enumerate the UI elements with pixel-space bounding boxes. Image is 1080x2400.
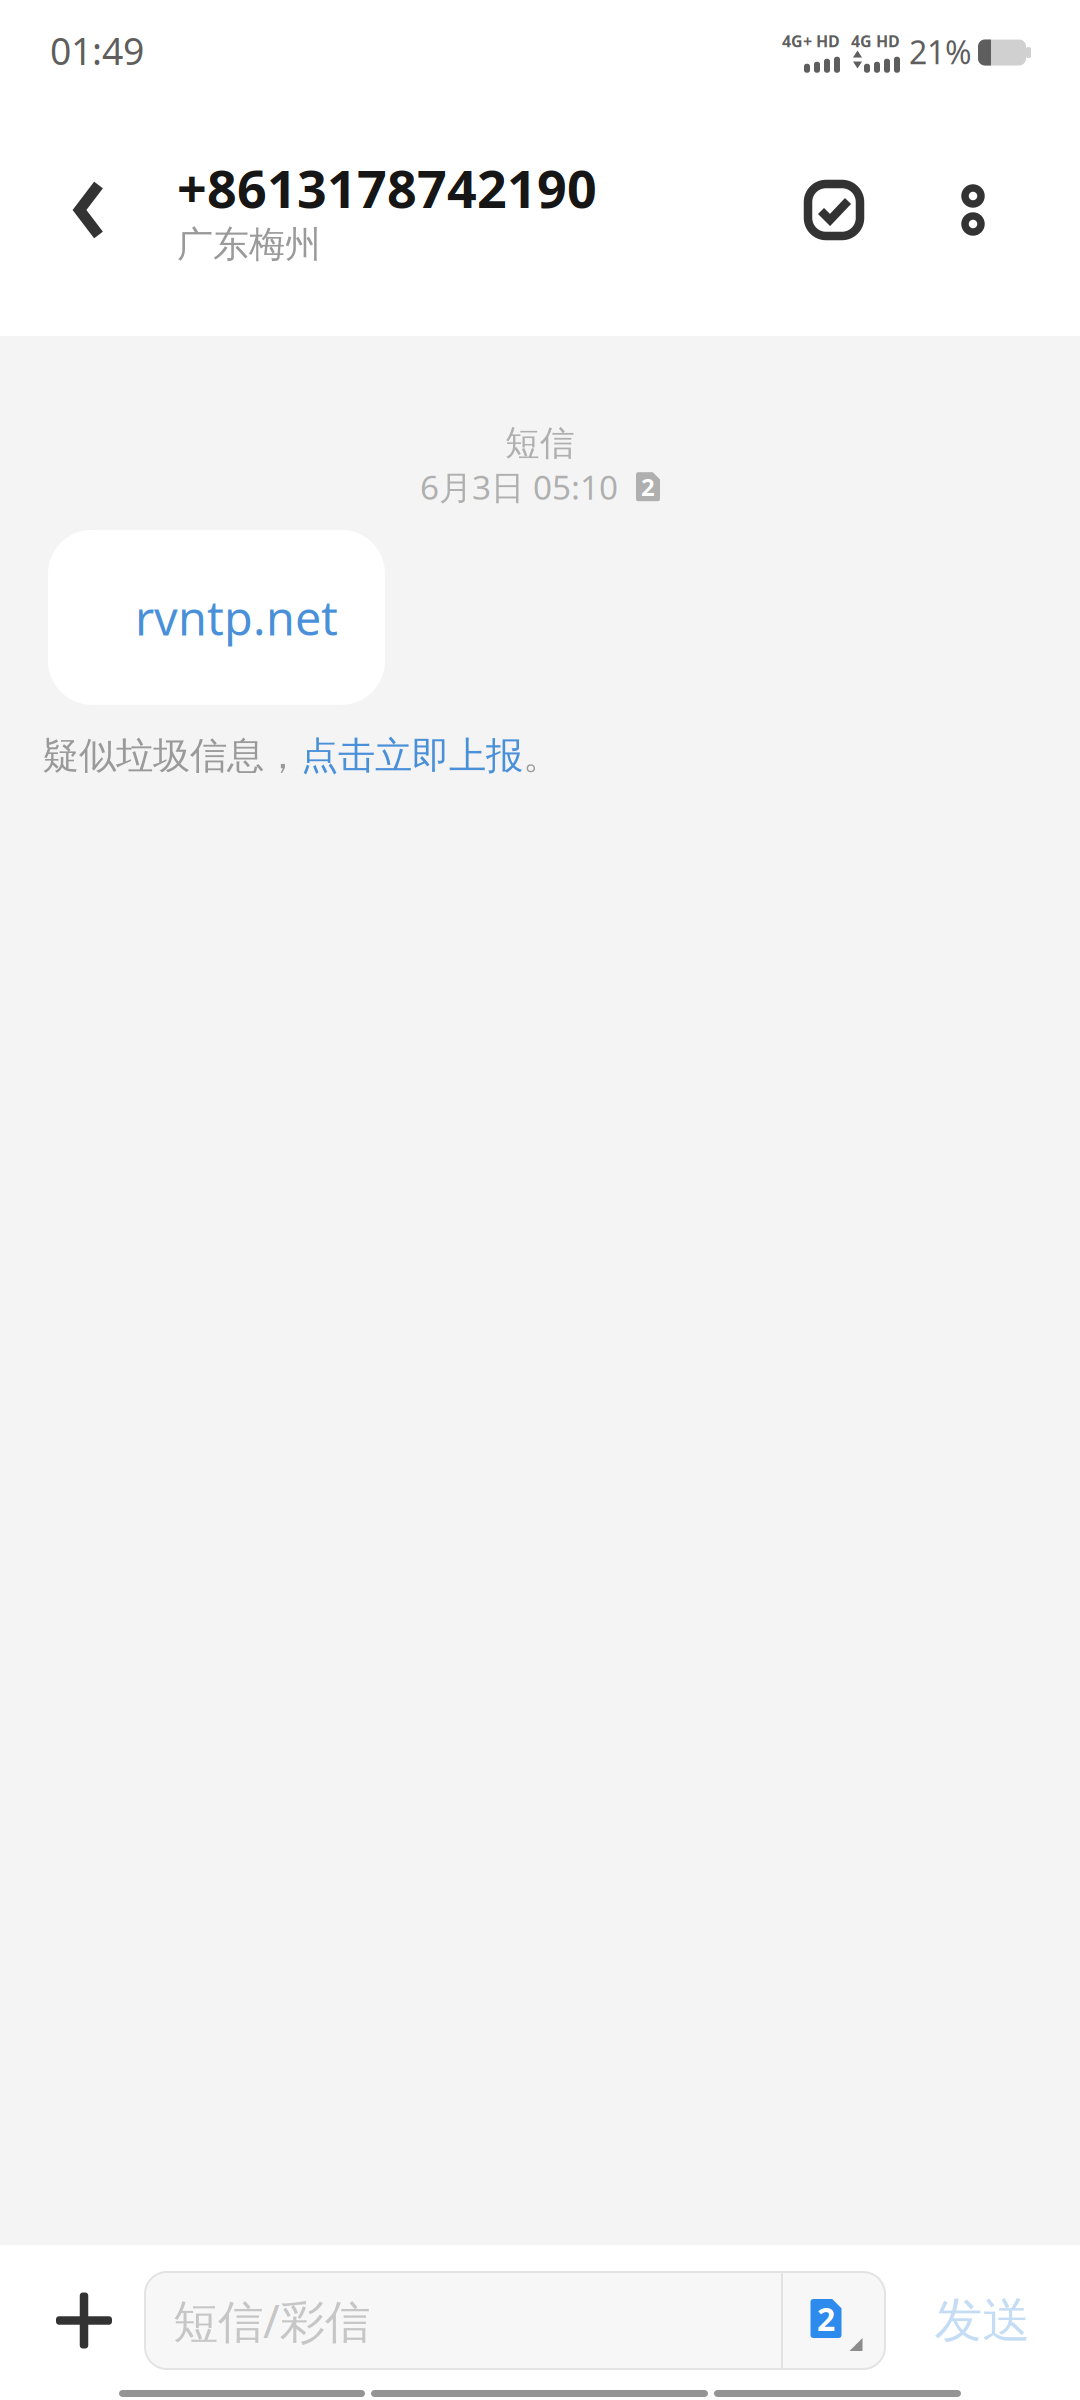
staticText: 01:49: [50, 26, 144, 75]
staticText: rvntp.net: [135, 586, 338, 648]
button[interactable]: 点击立即上报: [301, 733, 523, 779]
staticText: 。: [523, 733, 560, 779]
staticText: 4G+ HD: [782, 30, 840, 52]
staticText: 疑似垃圾信息，: [42, 733, 301, 779]
button[interactable]: Back: [0, 105, 148, 315]
staticText: 2: [641, 471, 655, 503]
staticText: 点击立即上报: [301, 733, 523, 779]
staticText: 4G HD: [851, 30, 900, 52]
button[interactable]: More options: [920, 107, 1026, 313]
staticText: 发送: [934, 2291, 1030, 2350]
staticText: 6月3日 05:10: [420, 465, 618, 509]
staticText: 2: [817, 2297, 835, 2340]
staticText: 21%: [909, 30, 972, 73]
staticText: +8613178742190: [177, 153, 597, 222]
staticText: 短信/彩信: [173, 2290, 370, 2351]
button[interactable]: 发送: [885, 2272, 1080, 2369]
button[interactable]: Attach: [0, 2272, 145, 2369]
button[interactable]: Select messages: [748, 104, 920, 316]
staticText: 广东梅州: [177, 222, 321, 267]
staticText: 短信: [505, 422, 575, 465]
button[interactable]: SIM 2: [781, 2272, 885, 2369]
